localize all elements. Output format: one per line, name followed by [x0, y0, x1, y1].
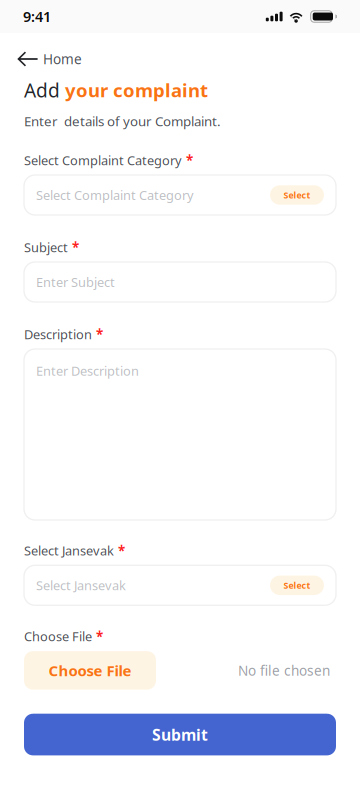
button[interactable]: Select — [270, 575, 324, 595]
staticText: Enter details of your Complaint. — [24, 112, 221, 130]
staticText: * — [186, 151, 193, 169]
staticText: Submit — [152, 724, 208, 745]
staticText: Select — [283, 579, 310, 591]
staticText: Choose File — [24, 628, 92, 645]
staticText: Select Complaint Category — [36, 186, 194, 204]
staticText: Enter Description — [36, 362, 139, 379]
staticText: Home — [43, 50, 82, 68]
staticText: * — [96, 627, 103, 645]
staticText: * — [96, 325, 103, 343]
button[interactable]: Submit — [24, 714, 336, 755]
staticText: Description — [24, 325, 92, 343]
staticText: Enter Subject — [36, 273, 115, 291]
staticText: * — [72, 238, 79, 256]
button[interactable]: Choose File — [24, 651, 156, 690]
staticText: 9:41 — [23, 7, 51, 26]
staticText: Subject — [24, 238, 68, 256]
staticText: Select Jansevak — [24, 542, 114, 559]
button[interactable]: Select Complaint Category — [24, 175, 336, 215]
staticText: your complaint — [65, 77, 208, 103]
staticText: * — [118, 541, 125, 560]
staticText: Add — [24, 77, 60, 103]
button[interactable]: Select Jansevak — [24, 565, 336, 605]
staticText: No file chosen — [238, 661, 330, 680]
button[interactable]: Enter Description — [24, 349, 336, 520]
staticText: Select Complaint Category — [24, 151, 182, 169]
button[interactable]: Select — [270, 185, 324, 205]
staticText: Choose File — [48, 660, 131, 680]
button[interactable]: Home — [0, 37, 360, 81]
staticText: Select — [283, 189, 310, 201]
button[interactable]: Enter Subject — [24, 262, 336, 302]
staticText: Select Jansevak — [36, 577, 126, 594]
